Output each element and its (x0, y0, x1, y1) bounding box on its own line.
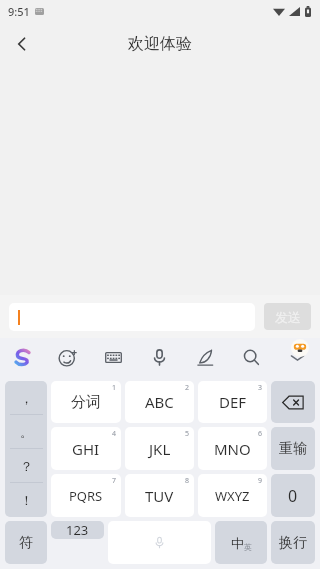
button[interactable]: 符 (5, 521, 47, 564)
button[interactable]: Collapse keyboard (274, 338, 320, 376)
staticText: GHI (72, 439, 100, 459)
button[interactable]: TUV (125, 474, 194, 517)
button[interactable]: ABC (125, 381, 194, 423)
button[interactable]: Handwriting (182, 338, 228, 376)
staticText: 6 (258, 429, 263, 439)
staticText: 符 (19, 534, 33, 552)
button[interactable] (9, 303, 255, 331)
button[interactable]: Back (0, 22, 44, 66)
button[interactable]: Keyboard layout (90, 338, 136, 376)
staticText: WXYZ (215, 487, 250, 505)
button[interactable]: PQRS (51, 474, 121, 517)
staticText: MNO (214, 439, 251, 459)
staticText: 欢迎体验 (128, 34, 192, 54)
staticText: TUV (145, 486, 174, 506)
button[interactable]: JKL (125, 427, 194, 470)
staticText: 。 (20, 424, 33, 440)
staticText: ？ (20, 458, 33, 474)
button[interactable]: Voice input (136, 338, 182, 376)
staticText: 5 (185, 429, 190, 439)
staticText: 换行 (279, 534, 307, 552)
button[interactable]: WXYZ (198, 474, 267, 517)
staticText: JKL (149, 439, 171, 459)
button[interactable]: Sogou input (0, 338, 45, 376)
staticText: 重输 (279, 440, 307, 458)
button[interactable]: Space (108, 521, 211, 564)
button[interactable]: Switch Chinese English (215, 521, 267, 564)
staticText: 发送 (275, 309, 301, 325)
staticText: 8 (185, 476, 190, 486)
button[interactable]: 分词 (51, 381, 121, 423)
button[interactable]: 重输 (271, 427, 315, 470)
staticText: 7 (112, 476, 117, 486)
staticText: 1 (112, 383, 117, 393)
button[interactable]: 123 (51, 521, 104, 539)
button[interactable]: 换行 (271, 521, 315, 564)
staticText: 9 (258, 476, 263, 486)
button[interactable]: Backspace (271, 381, 315, 423)
button[interactable]: DEF (198, 381, 267, 423)
button[interactable]: Punctuation (5, 381, 47, 517)
button[interactable]: Emoji (45, 338, 90, 376)
button[interactable]: Assistant avatar (291, 339, 309, 357)
staticText: 123 (66, 521, 89, 539)
staticText: 英 (244, 542, 252, 552)
staticText: DEF (219, 392, 247, 412)
button[interactable]: 0 (271, 474, 315, 517)
staticText: ， (20, 390, 33, 406)
staticText: 2 (185, 383, 190, 393)
staticText: ABC (145, 392, 174, 412)
staticText: 中 (231, 535, 244, 551)
staticText: 分词 (71, 393, 101, 412)
staticText: 4 (112, 429, 117, 439)
staticText: 9:51 (8, 4, 30, 19)
staticText: ！ (20, 492, 33, 508)
staticText: PQRS (69, 487, 103, 505)
button[interactable]: 发送 (264, 303, 311, 330)
button[interactable]: MNO (198, 427, 267, 470)
button[interactable]: Search (228, 338, 274, 376)
button[interactable]: GHI (51, 427, 121, 470)
staticText: 0 (288, 485, 298, 507)
staticText: 3 (258, 383, 263, 393)
